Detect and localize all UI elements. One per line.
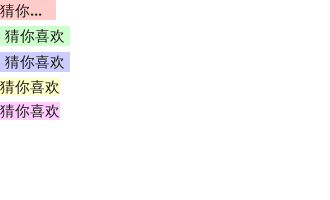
staticText: 猜你喜欢 [5, 27, 65, 45]
staticText: 猜你喜欢 [0, 78, 60, 96]
staticText: 猜你喜欢 [0, 102, 60, 120]
staticText: 猜你喜欢 [0, 0, 56, 20]
staticText: 猜你喜欢 [5, 53, 65, 71]
